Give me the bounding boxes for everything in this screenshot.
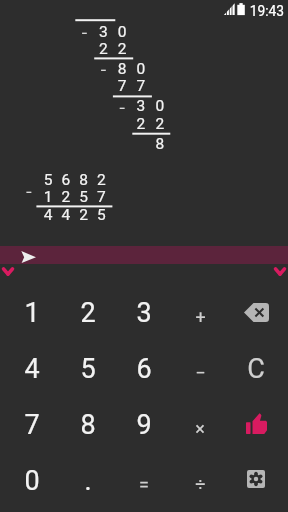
button[interactable]: Current problem [0,246,288,264]
button[interactable]: C [228,340,284,396]
staticText: 5 [43,171,52,189]
staticText: 3 [136,297,152,329]
button[interactable]: . [60,452,116,508]
button[interactable]: − [172,340,228,396]
staticText: 1 [43,188,52,206]
button[interactable]: 6 [116,340,172,396]
button[interactable]: 7 [4,396,60,452]
staticText: 2 [61,188,70,206]
button[interactable]: 4 [4,340,60,396]
staticText: − [100,64,107,77]
button[interactable]: Backspace [228,284,284,340]
button[interactable]: 0 [4,452,60,508]
staticText: 4 [61,206,70,224]
staticText: − [25,186,32,199]
staticText: 2 [155,115,164,133]
staticText: − [195,362,206,383]
button[interactable]: 1 [4,284,60,340]
staticText: 8 [79,171,88,189]
button[interactable]: 8 [60,396,116,452]
staticText: 2 [136,115,145,133]
staticText: 7 [97,188,106,206]
button[interactable]: Settings [228,452,284,508]
staticText: − [119,102,126,115]
button[interactable]: = [116,452,172,508]
staticText: + [195,306,206,327]
staticText: 8 [155,134,164,152]
staticText: = [139,474,149,495]
button[interactable]: ÷ [172,452,228,508]
staticText: 6 [136,353,152,385]
button[interactable]: Scroll down [274,267,286,276]
staticText: 2 [79,206,88,224]
staticText: 0 [155,97,164,115]
staticText: 0 [136,60,145,78]
button[interactable]: + [172,284,228,340]
staticText: 2 [99,40,108,58]
staticText: C [247,353,265,385]
staticText: 5 [80,353,96,385]
staticText: 7 [136,77,145,95]
staticText: − [81,27,88,40]
staticText: 2 [97,171,106,189]
staticText: 8 [118,60,127,78]
staticText: 2 [118,40,127,58]
staticText: 4 [43,206,52,224]
staticText: 7 [118,77,127,95]
staticText: 9 [136,409,152,441]
staticText: 4 [24,353,40,385]
staticText: 8 [80,409,96,441]
button[interactable]: Scroll down [2,267,14,276]
staticText: 0 [24,465,40,497]
staticText: 2 [80,297,96,329]
staticText: × [195,418,205,439]
staticText: 6 [61,171,70,189]
button[interactable]: × [172,396,228,452]
staticText: ÷ [195,474,206,495]
staticText: 1 [24,297,40,329]
button[interactable]: Check answer [228,396,284,452]
button[interactable]: 9 [116,396,172,452]
staticText: 3 [99,23,108,41]
staticText: 5 [97,206,106,224]
button[interactable]: 3 [116,284,172,340]
staticText: . [84,465,92,497]
staticText: 5 [79,188,88,206]
button[interactable]: 5 [60,340,116,396]
staticText: 7 [24,409,40,441]
button[interactable]: 2 [60,284,116,340]
staticText: 0 [118,23,127,41]
staticText: 19:43 [249,3,284,19]
staticText: 3 [136,97,145,115]
